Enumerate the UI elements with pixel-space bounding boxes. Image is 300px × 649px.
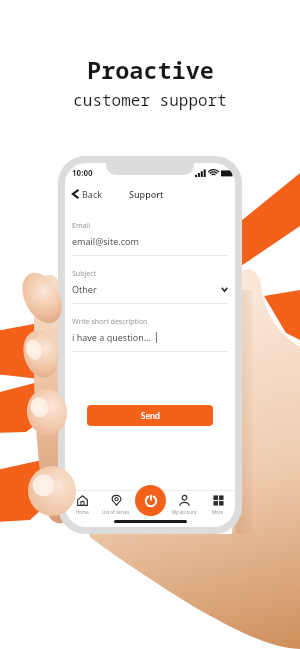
button[interactable]: List of serves [99,495,133,515]
staticText: More [212,509,224,515]
staticText: Home [76,509,89,515]
button[interactable]: Back [70,185,105,203]
staticText: Send [141,410,160,421]
staticText: i have a question... [72,331,151,343]
button[interactable]: My account [167,495,201,515]
staticText: 10:00 [72,167,93,178]
staticText: My account [172,509,197,515]
button[interactable]: Home [65,495,99,515]
staticText: customer support [73,89,227,111]
staticText: Email [72,221,90,231]
button[interactable]: More [201,495,235,515]
staticText: Support [129,188,164,200]
staticText: List of serves [102,509,130,515]
staticText: Proactive [87,54,214,86]
staticText: email@site.com [72,235,139,247]
staticText: Subject [72,269,97,279]
button[interactable]: Power [135,485,166,516]
staticText: Write short description [72,317,148,327]
staticText: Other [72,283,97,295]
staticText: Back [82,188,103,200]
button[interactable]: Send [87,405,213,426]
